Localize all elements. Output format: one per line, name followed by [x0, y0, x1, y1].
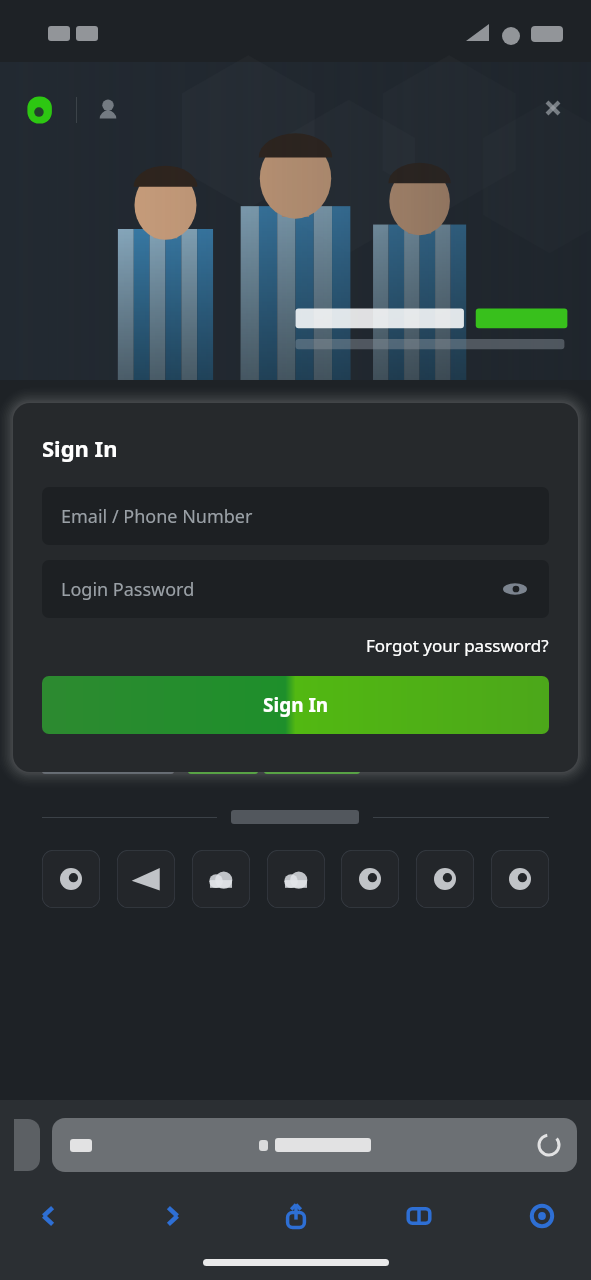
button[interactable]: Social login 2	[192, 850, 250, 908]
button[interactable]: Sign In	[42, 676, 549, 734]
button[interactable]: Social login 0	[42, 850, 100, 908]
button[interactable]: Email / Phone Number	[42, 487, 549, 545]
staticText: Login Password	[61, 577, 500, 602]
button[interactable]: Back	[26, 1193, 72, 1239]
button[interactable]: Social login 6	[491, 850, 549, 908]
button[interactable]: Share	[273, 1193, 319, 1239]
staticText: Sign In	[263, 692, 329, 718]
button[interactable]: Bookmarks	[396, 1193, 442, 1239]
button[interactable]: Show password	[500, 574, 530, 604]
button[interactable]: Social login 4	[341, 850, 399, 908]
button[interactable]: Tabs	[519, 1193, 565, 1239]
button[interactable]: Social login 1	[117, 850, 175, 908]
staticText: Email / Phone Number	[61, 504, 530, 529]
button[interactable]: Login Password	[42, 560, 549, 618]
staticText: Forgot your password?	[366, 634, 549, 657]
button[interactable]: Social login 5	[416, 850, 474, 908]
button[interactable]: Forward	[149, 1193, 195, 1239]
button[interactable]: Social login 3	[267, 850, 325, 908]
button[interactable]: Forgot your password?	[366, 634, 549, 657]
button[interactable]: Close	[533, 88, 573, 128]
button[interactable]	[52, 1118, 577, 1172]
staticText: Sign In	[42, 433, 118, 463]
